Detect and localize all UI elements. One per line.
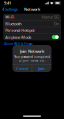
staticText: Home 5G [42,14,59,19]
button[interactable]: Airplane Mode [3,34,61,40]
button[interactable]: Settings [2,6,19,12]
button[interactable]: Personal Hotspot [3,27,61,33]
staticText: On [54,21,59,26]
staticText: Wi-Fi [5,14,14,19]
button[interactable]: Bluetooth [3,20,61,27]
staticText: Personal Hotspot [5,28,34,33]
staticText: Join Network [20,49,44,54]
button[interactable]: About Wi-Fi & Privacy [4,42,32,46]
staticText: Bluetooth [5,21,21,26]
staticText: Join [38,66,45,71]
staticText: 9:41 [4,0,11,6]
staticText: Your password is required to join “Home … [14,55,50,62]
staticText: Network [24,7,40,12]
staticText: Airplane Mode [5,34,31,40]
button[interactable]: Join [32,65,51,72]
staticText: Settings [5,7,18,12]
staticText: Cancel [16,66,28,71]
button[interactable]: Cancel [12,65,32,72]
staticText: About Wi-Fi & Privacy [4,42,32,46]
button[interactable]: Wi-Fi [3,14,61,20]
